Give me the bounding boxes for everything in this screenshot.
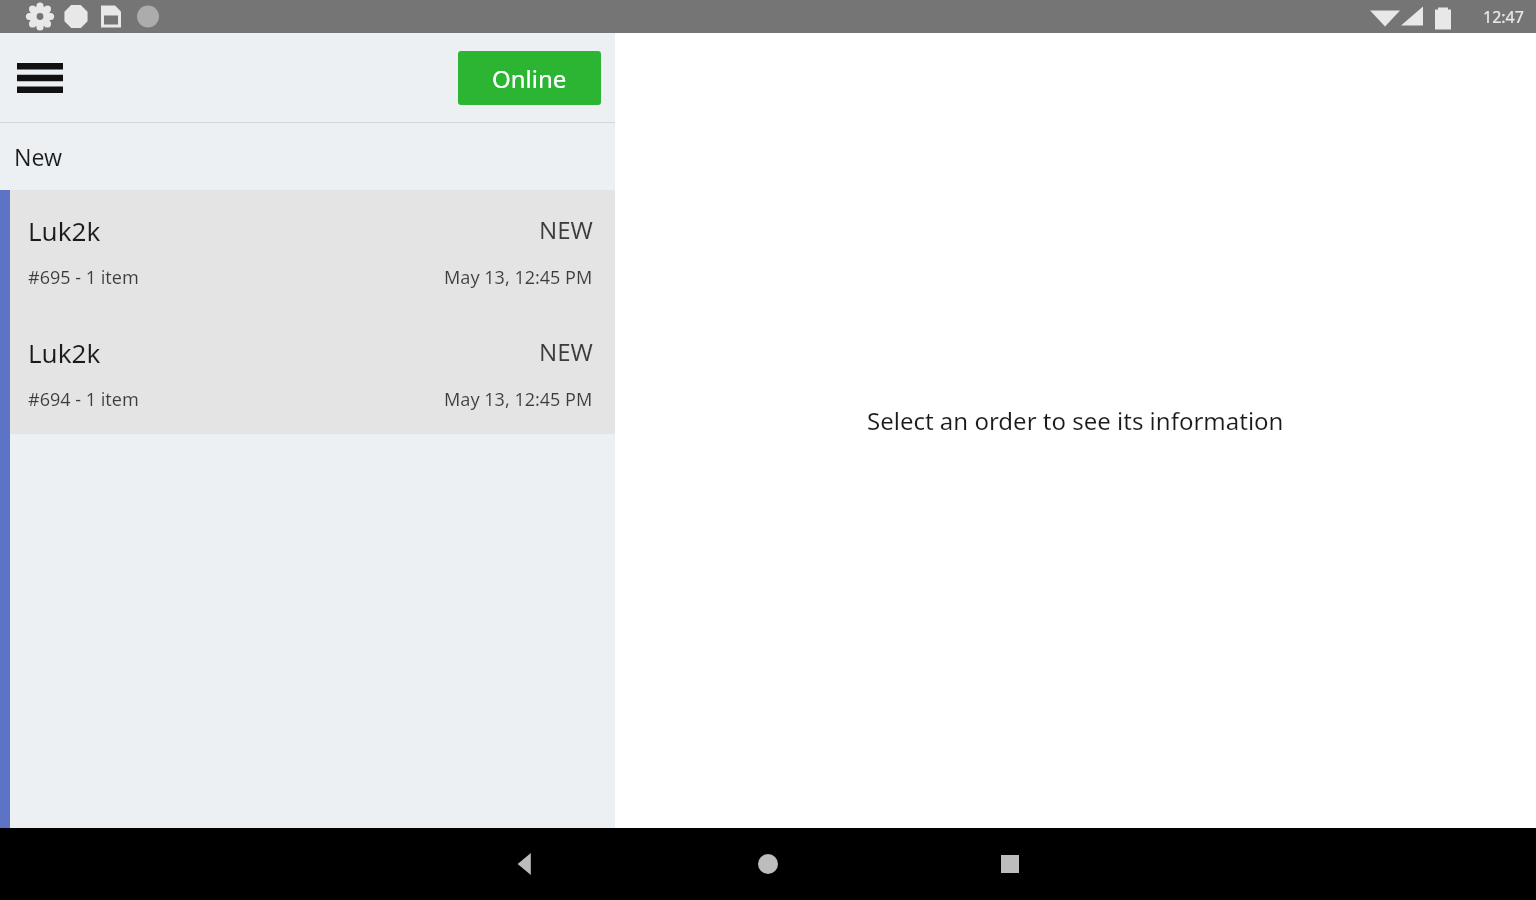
button[interactable]: Online [458,51,601,105]
staticText: #695 - 1 item [28,265,139,290]
staticText: NEW [539,335,593,368]
button[interactable]: Home [732,828,804,900]
staticText: #694 - 1 item [28,387,139,412]
staticText: Online [492,62,567,95]
staticText: Luk2k [28,213,101,248]
button[interactable]: Menu [10,50,70,106]
staticText: NEW [539,213,593,246]
staticText: New [14,141,63,172]
staticText: Luk2k [28,335,101,370]
staticText: May 13, 12:45 PM [444,387,593,412]
button[interactable]: Luk2k [0,312,615,434]
staticText: Select an order to see its information [867,404,1284,437]
staticText: 12:47 [1483,6,1524,28]
button[interactable]: Recent apps [974,828,1046,900]
staticText: May 13, 12:45 PM [444,265,593,290]
button[interactable]: Back [490,828,562,900]
button[interactable]: Luk2k [0,190,615,312]
